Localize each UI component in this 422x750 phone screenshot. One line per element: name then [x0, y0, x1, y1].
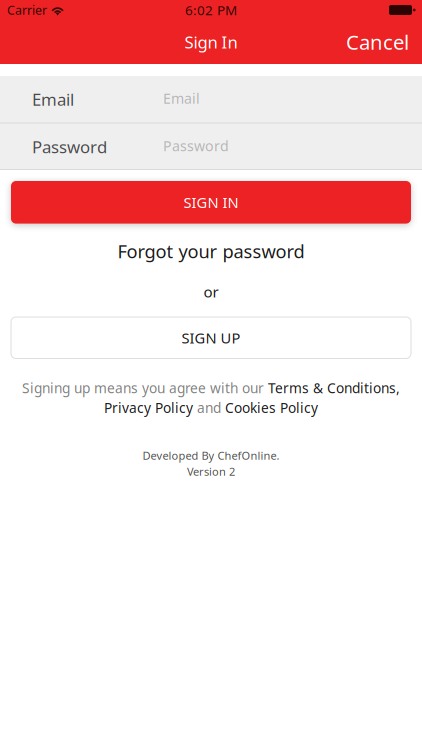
button[interactable]: SIGN IN — [11, 181, 411, 224]
button[interactable]: Forgot your password — [117, 232, 304, 270]
staticText: Version 2 — [187, 464, 235, 479]
staticText: Password — [32, 135, 107, 158]
staticText: or — [203, 281, 218, 302]
staticText: Sign In — [184, 31, 237, 53]
staticText: Email — [163, 89, 200, 108]
staticText: Forgot your password — [117, 239, 304, 263]
button[interactable]: Email — [0, 76, 422, 122]
button[interactable]: Password — [0, 123, 422, 170]
button[interactable]: Cancel — [326, 18, 422, 66]
staticText: Carrier — [7, 2, 47, 18]
staticText: 6:02 PM — [185, 1, 237, 19]
staticText: Email — [32, 88, 74, 111]
staticText: Cancel — [346, 28, 409, 56]
staticText: Signing up means you agree with our Term… — [22, 378, 400, 397]
staticText: Password — [163, 136, 229, 155]
staticText: Privacy Policy and Cookies Policy — [104, 398, 318, 417]
staticText: SIGN UP — [181, 328, 240, 348]
button[interactable]: SIGN UP — [11, 317, 411, 358]
staticText: Developed By ChefOnline. — [142, 448, 279, 463]
staticText: SIGN IN — [183, 192, 238, 212]
